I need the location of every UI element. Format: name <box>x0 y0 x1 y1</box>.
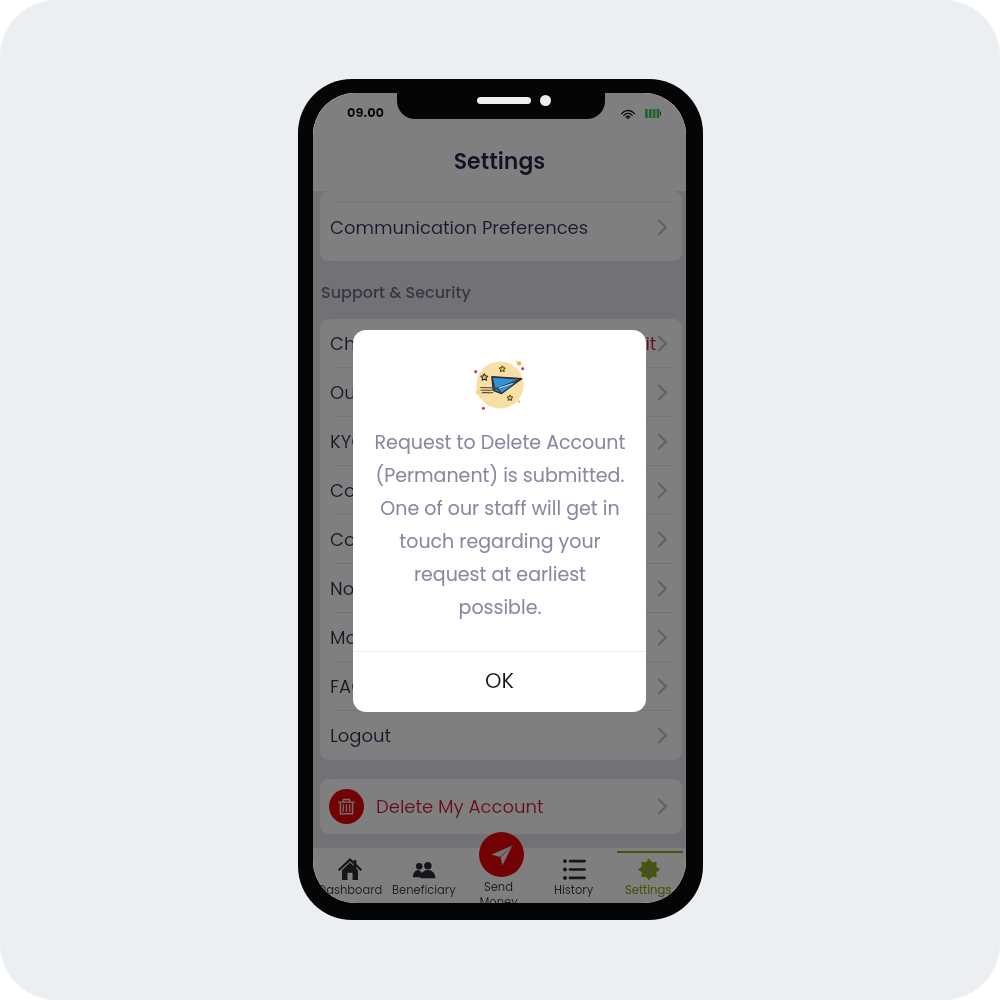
button[interactable]: Communication Preferences <box>320 203 682 251</box>
button[interactable]: Compliance <box>320 515 682 564</box>
button[interactable]: Contact Us <box>320 466 682 515</box>
button[interactable]: Logout <box>320 711 682 760</box>
button[interactable]: Delete My Account <box>320 779 682 834</box>
staticText: OK <box>485 666 515 695</box>
button[interactable]: Change Password <box>320 319 682 368</box>
staticText: Money Transfer <box>330 625 468 650</box>
staticText: 09.00 <box>347 103 385 121</box>
button[interactable]: Send Money <box>461 848 536 903</box>
staticText: Delete My Account <box>376 794 544 819</box>
staticText: Settings <box>625 882 672 898</box>
staticText: Dashboard <box>318 882 383 898</box>
staticText: Support & Security <box>321 281 471 303</box>
staticText: Change Password <box>330 331 494 356</box>
staticText: Beneficiary <box>392 882 456 898</box>
staticText: Our Branches <box>330 380 452 405</box>
button[interactable]: Money Transfer <box>320 613 682 662</box>
staticText: Contact Us <box>330 478 430 503</box>
button[interactable]: Our Branches <box>320 368 682 417</box>
button[interactable]: History <box>536 848 611 903</box>
button[interactable]: KYC Document <box>320 417 682 466</box>
button[interactable]: Notification <box>320 564 682 613</box>
button[interactable]: Dashboard <box>313 848 387 903</box>
staticText: Communication Preferences <box>330 215 589 240</box>
staticText: Compliance <box>330 527 441 552</box>
staticText: Request to Delete Account (Permanent) is… <box>371 429 629 621</box>
staticText: KYC Document <box>330 429 465 454</box>
staticText: Notification <box>330 576 433 601</box>
button[interactable]: Settings <box>611 848 686 903</box>
staticText: Send Money <box>461 879 536 903</box>
button[interactable]: OK <box>353 652 646 712</box>
staticText: FAQ <box>330 674 366 699</box>
staticText: History <box>554 882 594 898</box>
staticText: Settings <box>313 146 686 177</box>
staticText: Logout <box>330 723 392 748</box>
button[interactable]: Send Money <box>479 832 524 877</box>
button[interactable]: Beneficiary <box>387 848 461 903</box>
staticText: Edit <box>624 331 657 356</box>
button[interactable]: FAQ <box>320 662 682 711</box>
